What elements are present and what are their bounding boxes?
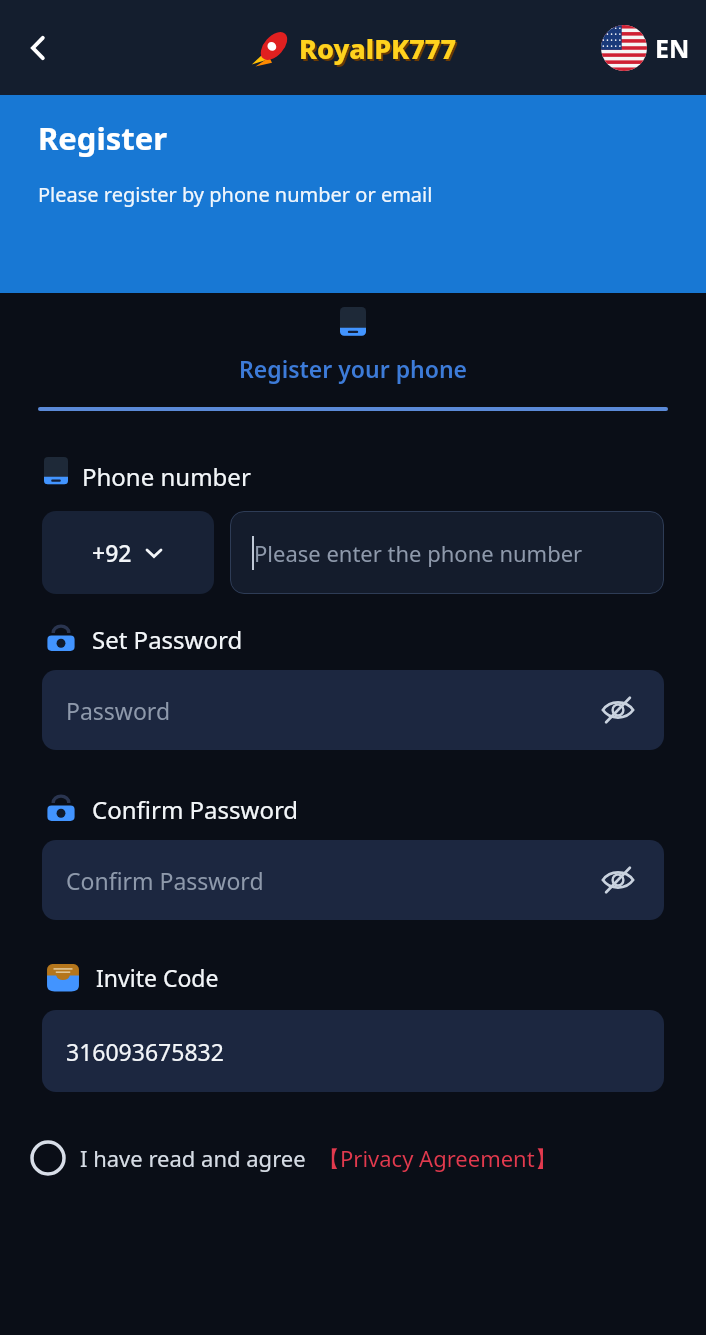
staticText: Register your phone: [239, 353, 468, 384]
staticText: Register: [38, 117, 168, 159]
staticText: +92: [92, 537, 132, 568]
button[interactable]: 【Privacy Agreement】: [318, 1143, 557, 1173]
staticText: Invite Code: [96, 962, 219, 993]
staticText: I have read and agree: [80, 1143, 306, 1173]
button[interactable]: Register your phone: [0, 307, 706, 384]
staticText: Confirm Password: [92, 793, 299, 826]
button[interactable]: +92: [42, 511, 214, 594]
staticText: Please register by phone number or email: [38, 181, 433, 208]
staticText: Phone number: [82, 460, 251, 493]
staticText: Set Password: [92, 623, 243, 656]
button[interactable]: Password: [42, 670, 664, 750]
staticText: Please enter the phone number: [254, 538, 583, 568]
button[interactable]: Please enter the phone number: [230, 511, 664, 594]
button[interactable]: Show password: [596, 858, 640, 902]
staticText: EN: [655, 31, 690, 65]
button[interactable]: Back: [8, 18, 68, 78]
button[interactable]: I have read and agree: [30, 1140, 676, 1176]
button[interactable]: Show password: [596, 688, 640, 732]
staticText: Confirm Password: [66, 865, 264, 896]
staticText: Password: [66, 695, 171, 726]
button[interactable]: 316093675832: [42, 1010, 664, 1092]
staticText: RoyalPK777: [299, 30, 457, 67]
staticText: RoyalPK777: [301, 32, 459, 69]
button[interactable]: Confirm Password: [42, 840, 664, 920]
button[interactable]: EN: [601, 25, 690, 71]
staticText: 316093675832: [66, 1036, 224, 1067]
